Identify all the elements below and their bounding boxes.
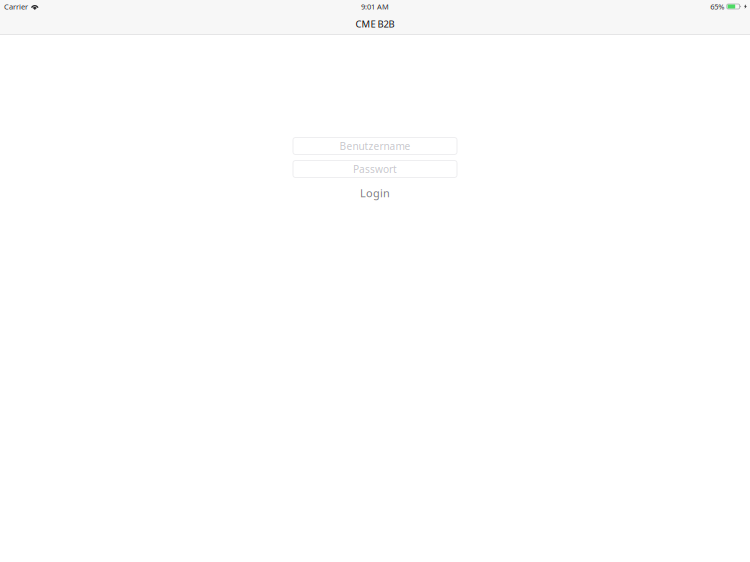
staticText: CME B2B <box>355 17 394 30</box>
staticText: Benutzername <box>339 139 410 153</box>
button[interactable]: Login <box>293 185 457 200</box>
staticText: Carrier <box>4 1 28 12</box>
staticText: 9:01 AM <box>361 1 389 12</box>
staticText: Login <box>360 186 390 200</box>
staticText: Passwort <box>353 162 397 176</box>
staticText: 65% <box>710 1 724 12</box>
button[interactable]: Benutzername <box>293 137 457 154</box>
button[interactable]: Passwort <box>293 160 457 177</box>
